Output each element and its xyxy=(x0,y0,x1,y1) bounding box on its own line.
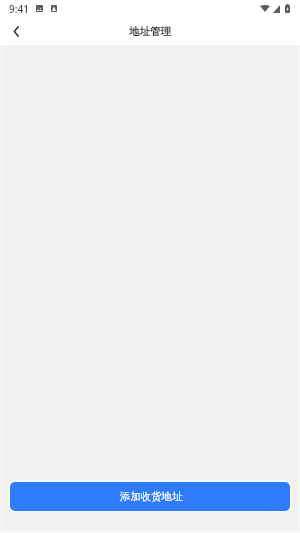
button[interactable]: Back xyxy=(3,18,29,44)
button[interactable]: 添加收货地址 xyxy=(10,482,290,511)
staticText: 地址管理 xyxy=(129,25,171,38)
staticText: 添加收货地址 xyxy=(120,490,183,503)
staticText: 9:41 xyxy=(9,2,29,16)
